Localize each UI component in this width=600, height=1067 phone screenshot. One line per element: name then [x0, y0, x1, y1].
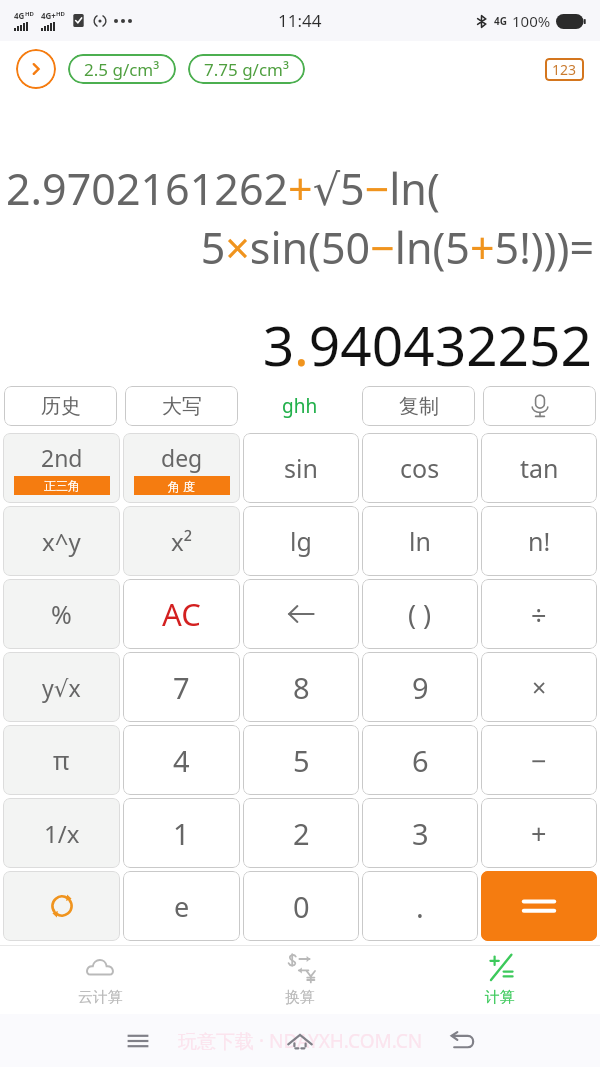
staticText: e: [174, 888, 190, 925]
staticText: 4G+: [41, 10, 56, 21]
button[interactable]: ( ): [362, 579, 478, 649]
staticText: 角 度: [168, 478, 196, 494]
button[interactable]: 换算: [200, 946, 400, 1014]
button[interactable]: 4: [123, 725, 240, 795]
staticText: cos: [400, 451, 440, 485]
staticText: ×: [532, 670, 547, 704]
button[interactable]: y√x: [3, 652, 120, 722]
button[interactable]: 云计算: [0, 946, 200, 1014]
staticText: AC: [162, 593, 201, 635]
staticText: 5×sin(50−ln(5+5!)))=: [6, 218, 594, 277]
button[interactable]: 9: [362, 652, 478, 722]
staticText: 正三角: [44, 478, 80, 493]
button[interactable]: 7: [123, 652, 240, 722]
button[interactable]: deg: [123, 433, 240, 503]
button[interactable]: −: [481, 725, 597, 795]
staticText: 换算: [285, 988, 315, 1007]
button[interactable]: lg: [243, 506, 359, 576]
staticText: ( ): [408, 596, 432, 633]
staticText: 6: [412, 741, 429, 780]
staticText: 云计算: [78, 988, 123, 1007]
staticText: 8: [293, 668, 310, 707]
staticText: .: [416, 887, 424, 926]
staticText: 1/x: [44, 817, 80, 850]
button[interactable]: +: [481, 798, 597, 868]
staticText: 4G: [14, 10, 25, 21]
button[interactable]: Equals: [481, 871, 597, 941]
button[interactable]: Expand: [16, 49, 56, 89]
staticText: deg: [161, 442, 203, 473]
staticText: 3.940432252: [8, 307, 592, 382]
button[interactable]: ln: [362, 506, 478, 576]
staticText: x^y: [42, 525, 81, 558]
staticText: 0: [293, 887, 310, 926]
staticText: 3: [412, 814, 429, 853]
staticText: π: [53, 743, 70, 777]
button[interactable]: AC: [123, 579, 240, 649]
staticText: lg: [290, 524, 312, 558]
button[interactable]: 5: [243, 725, 359, 795]
staticText: +: [531, 815, 547, 852]
button[interactable]: sin: [243, 433, 359, 503]
staticText: 100%: [512, 11, 551, 31]
button[interactable]: 123: [545, 58, 584, 81]
staticText: 2: [293, 814, 310, 853]
staticText: sin: [284, 451, 318, 485]
button[interactable]: 8: [243, 652, 359, 722]
button[interactable]: Backspace: [243, 579, 359, 649]
staticText: ghh: [282, 393, 318, 419]
button[interactable]: Voice input: [483, 386, 596, 426]
button[interactable]: tan: [481, 433, 597, 503]
button[interactable]: 计算: [400, 946, 600, 1014]
button[interactable]: π: [3, 725, 120, 795]
button[interactable]: %: [3, 579, 120, 649]
staticText: ln: [409, 524, 431, 558]
button[interactable]: 2nd: [3, 433, 120, 503]
button[interactable]: Refresh: [3, 871, 120, 941]
staticText: 2.5 g/cm³: [84, 58, 160, 81]
button[interactable]: ÷: [481, 579, 597, 649]
button[interactable]: Home: [276, 1017, 324, 1065]
button[interactable]: cos: [362, 433, 478, 503]
button[interactable]: 7.75 g/cm³: [188, 54, 305, 84]
button[interactable]: x²: [123, 506, 240, 576]
button[interactable]: 1/x: [3, 798, 120, 868]
button[interactable]: Recent apps: [114, 1017, 162, 1065]
staticText: 7.75 g/cm³: [204, 58, 289, 81]
button[interactable]: Back: [438, 1017, 486, 1065]
button[interactable]: 复制: [362, 386, 475, 426]
staticText: %: [51, 597, 72, 631]
button[interactable]: 大写: [125, 386, 238, 426]
staticText: 大写: [162, 394, 202, 419]
button[interactable]: 1: [123, 798, 240, 868]
button[interactable]: 0: [243, 871, 359, 941]
button[interactable]: 2: [243, 798, 359, 868]
staticText: 2nd: [41, 442, 83, 473]
button[interactable]: e: [123, 871, 240, 941]
staticText: 玩意下载 · NDAYXH.COM.CN: [178, 1028, 423, 1054]
staticText: 7: [173, 668, 190, 707]
button[interactable]: 6: [362, 725, 478, 795]
staticText: 计算: [485, 988, 515, 1007]
staticText: 123: [552, 60, 577, 79]
button[interactable]: 2.5 g/cm³: [68, 54, 176, 84]
button[interactable]: x^y: [3, 506, 120, 576]
staticText: 2.9702161262+√5−ln(: [6, 159, 594, 218]
staticText: 5: [293, 741, 310, 780]
button[interactable]: 3: [362, 798, 478, 868]
button[interactable]: .: [362, 871, 478, 941]
button[interactable]: 历史: [4, 386, 117, 426]
staticText: y√x: [42, 672, 81, 703]
button[interactable]: ×: [481, 652, 597, 722]
staticText: 历史: [41, 394, 81, 419]
staticText: −: [531, 742, 547, 779]
staticText: n!: [528, 524, 551, 558]
staticText: 11:44: [278, 9, 322, 32]
button[interactable]: n!: [481, 506, 597, 576]
staticText: 4G: [494, 14, 507, 28]
staticText: ÷: [531, 596, 547, 633]
staticText: HD: [56, 10, 65, 18]
staticText: 9: [412, 668, 429, 707]
staticText: HD: [25, 10, 34, 18]
staticText: 1: [173, 814, 190, 853]
